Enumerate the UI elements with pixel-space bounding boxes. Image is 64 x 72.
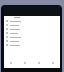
button[interactable]	[4, 35, 60, 39]
button[interactable]	[4, 31, 60, 35]
button[interactable]: Tab 0	[4, 59, 18, 66]
button[interactable]	[4, 23, 60, 27]
button[interactable]	[4, 39, 60, 43]
button[interactable]	[4, 27, 60, 31]
button[interactable]	[4, 19, 60, 23]
button[interactable]: Tab 2	[32, 59, 46, 66]
button[interactable]	[4, 43, 60, 47]
button[interactable]: Tab 3	[46, 59, 60, 66]
button[interactable]: Tab 1	[18, 59, 32, 66]
